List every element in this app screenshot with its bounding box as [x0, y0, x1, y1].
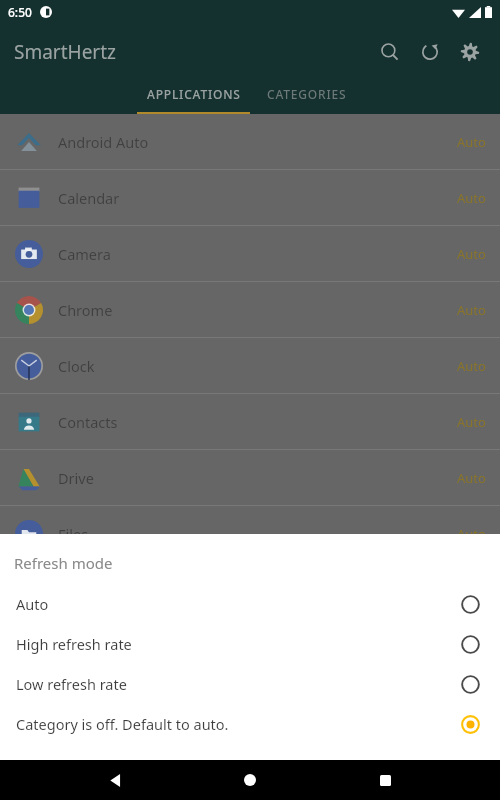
staticText: SmartHertz [14, 39, 116, 65]
staticText: Drive [58, 468, 457, 488]
staticText: Low refresh rate [16, 674, 461, 694]
button[interactable]: Settings [450, 32, 490, 72]
staticText: Auto [457, 357, 486, 375]
button[interactable]: High refresh rate [0, 624, 500, 664]
staticText: Android Auto [58, 132, 457, 152]
staticText: High refresh rate [16, 634, 461, 654]
staticText: Chrome [58, 300, 457, 320]
button[interactable]: Drive [0, 450, 500, 506]
button[interactable]: Gmail [0, 562, 500, 618]
button[interactable]: Calendar [0, 170, 500, 226]
staticText: Auto [457, 245, 486, 263]
button[interactable]: APPLICATIONS [137, 80, 250, 114]
button[interactable]: Contacts [0, 394, 500, 450]
staticText: Auto [457, 413, 486, 431]
button[interactable]: Auto [0, 584, 500, 624]
button[interactable]: Search [370, 32, 410, 72]
button[interactable]: Back [95, 760, 135, 800]
staticText: Clock [58, 356, 457, 376]
button[interactable]: Files [0, 506, 500, 562]
button[interactable]: Refresh [410, 32, 450, 72]
staticText: Contacts [58, 412, 457, 432]
button[interactable]: Chrome [0, 282, 500, 338]
button[interactable]: Android Auto [0, 114, 500, 170]
button[interactable]: Recents [365, 760, 405, 800]
staticText: Auto [16, 594, 461, 614]
button[interactable]: Home [230, 760, 270, 800]
button[interactable]: Low refresh rate [0, 664, 500, 704]
staticText: CATEGORIES [267, 86, 347, 102]
button[interactable]: Category is off. Default to auto. [0, 704, 500, 744]
staticText: Category is off. Default to auto. [16, 714, 461, 734]
staticText: APPLICATIONS [147, 86, 241, 102]
button[interactable]: CATEGORIES [250, 80, 363, 114]
staticText: Calendar [58, 188, 457, 208]
staticText: Camera [58, 244, 457, 264]
staticText: Auto [457, 525, 486, 543]
staticText: 6:50 [8, 4, 32, 20]
staticText: Auto [457, 133, 486, 151]
staticText: Auto [457, 581, 486, 599]
staticText: Auto [457, 189, 486, 207]
staticText: Files [58, 524, 457, 544]
staticText: Refresh mode [14, 553, 113, 573]
button[interactable]: Clock [0, 338, 500, 394]
staticText: Auto [457, 469, 486, 487]
staticText: Auto [457, 301, 486, 319]
button[interactable]: Camera [0, 226, 500, 282]
